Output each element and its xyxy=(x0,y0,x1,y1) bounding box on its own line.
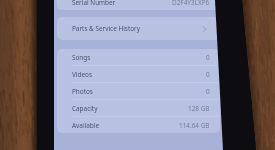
staticText: 128 GB xyxy=(188,104,210,113)
staticText: Songs xyxy=(72,53,91,62)
staticText: Photos xyxy=(72,87,93,96)
staticText: Capacity xyxy=(72,104,98,113)
button[interactable]: Parts & Service History xyxy=(57,17,220,40)
button[interactable]: Capacity xyxy=(57,100,220,117)
staticText: Parts & Service History xyxy=(72,24,140,33)
staticText: Serial Number xyxy=(72,0,116,7)
button[interactable]: Available xyxy=(57,117,220,133)
button[interactable]: Songs xyxy=(57,49,220,66)
button[interactable]: Videos xyxy=(57,66,220,83)
staticText: 114.64 GB xyxy=(179,121,210,130)
staticText: Videos xyxy=(72,70,92,79)
staticText: D2F4Y3LXP6 xyxy=(172,0,210,7)
button[interactable]: Serial Number xyxy=(57,0,220,10)
button[interactable]: Photos xyxy=(57,83,220,100)
staticText: 0 xyxy=(206,70,210,79)
staticText: Available xyxy=(72,121,99,130)
staticText: 0 xyxy=(206,87,210,96)
staticText: 0 xyxy=(206,53,210,62)
